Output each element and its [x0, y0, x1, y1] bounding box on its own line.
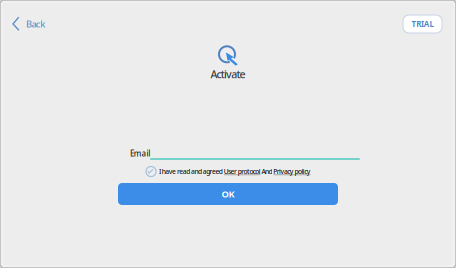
staticText: OK: [221, 188, 234, 200]
button[interactable]: TRIAL: [403, 15, 442, 33]
button[interactable]: I have read and agreed: [146, 166, 156, 176]
staticText: Activate: [210, 67, 246, 81]
staticText: Back: [26, 18, 45, 30]
button[interactable]: OK: [118, 183, 338, 205]
staticText: I have read and agreed User protocol And…: [159, 167, 311, 176]
button[interactable]: Email: [150, 148, 360, 160]
button[interactable]: Back: [0, 9, 55, 38]
staticText: TRIAL: [412, 19, 433, 29]
staticText: Email: [130, 148, 150, 159]
